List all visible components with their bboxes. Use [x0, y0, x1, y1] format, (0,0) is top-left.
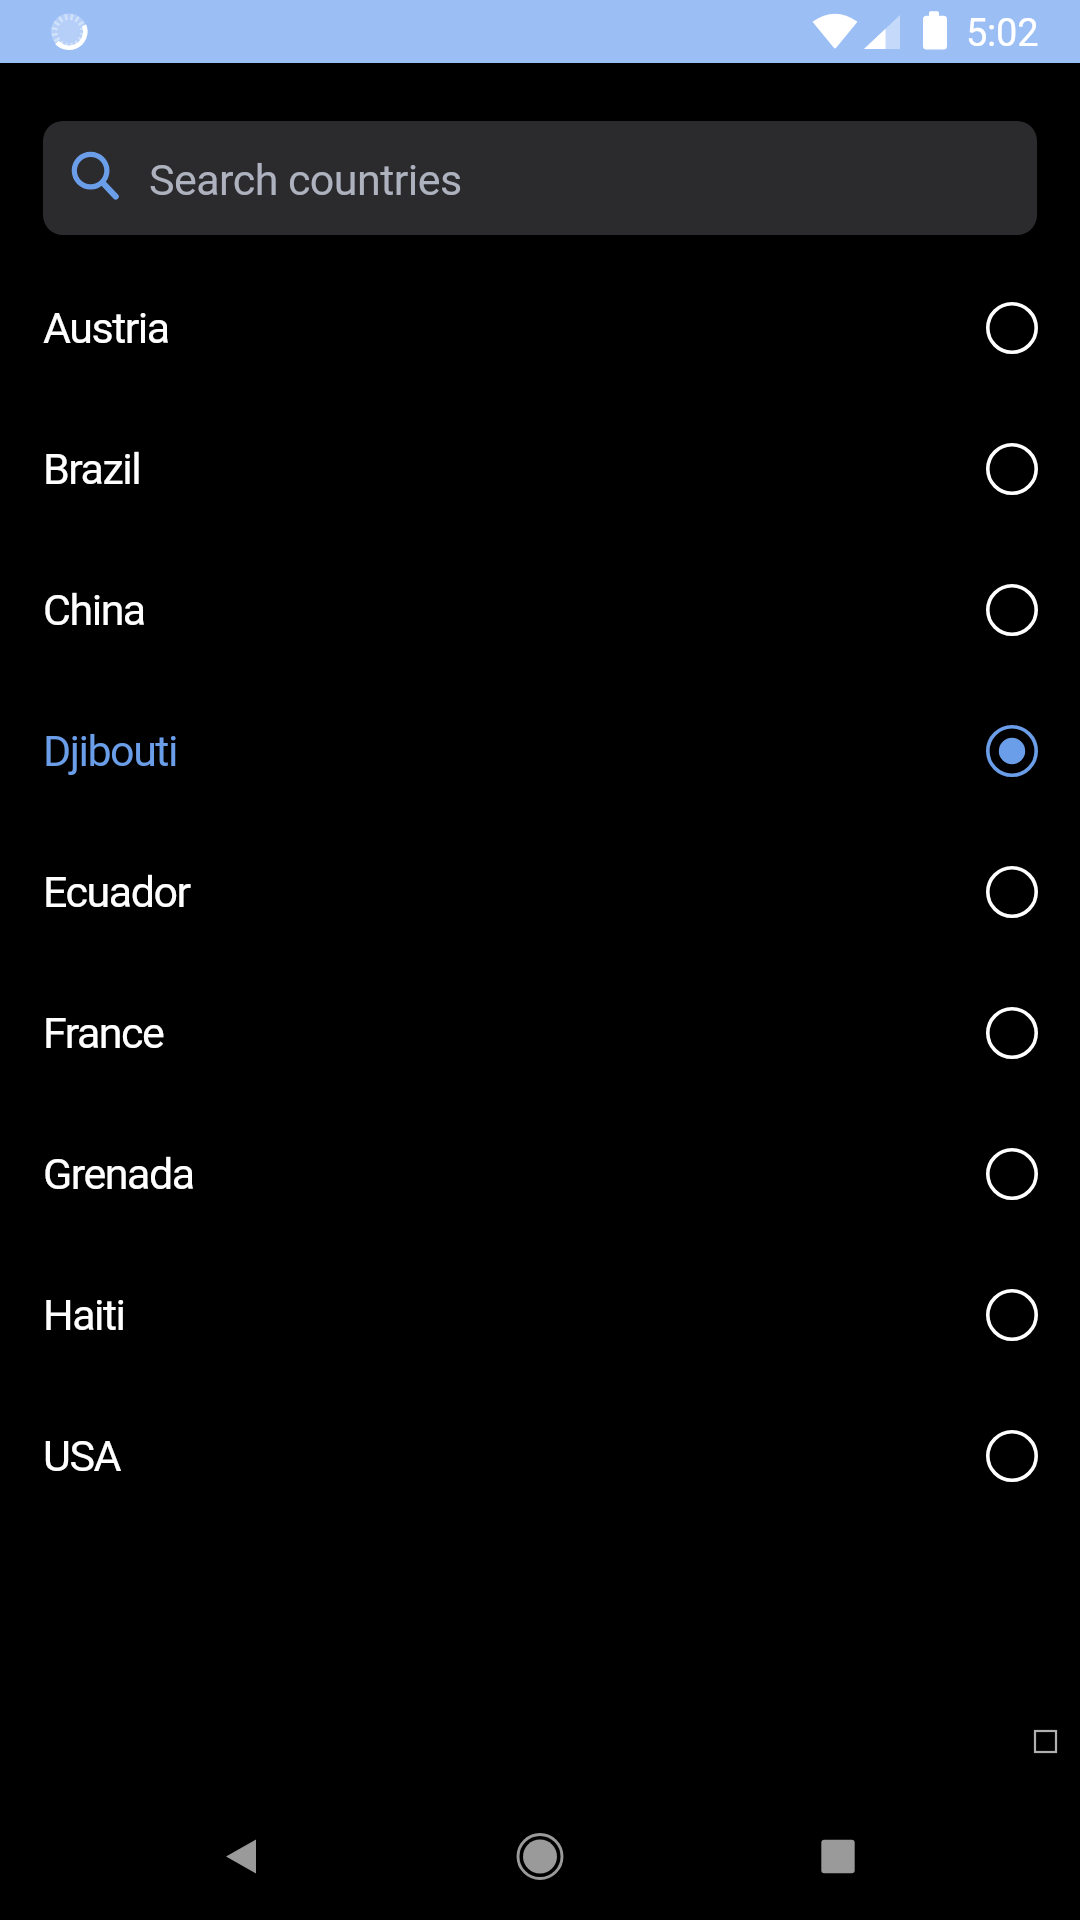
button[interactable]: Recent apps: [775, 1794, 901, 1920]
button[interactable]: Search countries: [43, 121, 1037, 235]
staticText: Austria: [43, 303, 169, 353]
button[interactable]: China: [0, 539, 1080, 680]
button[interactable]: USA: [0, 1385, 1080, 1526]
staticText: Grenada: [43, 1149, 194, 1199]
staticText: USA: [43, 1431, 120, 1481]
button[interactable]: Brazil: [0, 398, 1080, 539]
button[interactable]: Ecuador: [0, 821, 1080, 962]
button[interactable]: Haiti: [0, 1244, 1080, 1385]
staticText: China: [43, 585, 145, 635]
staticText: France: [43, 1008, 164, 1058]
button[interactable]: Grenada: [0, 1103, 1080, 1244]
button[interactable]: Home: [477, 1794, 603, 1920]
button[interactable]: Back: [178, 1794, 304, 1920]
button[interactable]: Austria: [0, 257, 1080, 398]
staticText: Search countries: [149, 155, 462, 205]
staticText: Haiti: [43, 1290, 125, 1340]
staticText: Brazil: [43, 444, 141, 494]
staticText: 5:02: [966, 11, 1039, 56]
staticText: Ecuador: [43, 867, 190, 917]
button[interactable]: France: [0, 962, 1080, 1103]
staticText: Djibouti: [43, 726, 177, 776]
button[interactable]: Djibouti: [0, 680, 1080, 821]
